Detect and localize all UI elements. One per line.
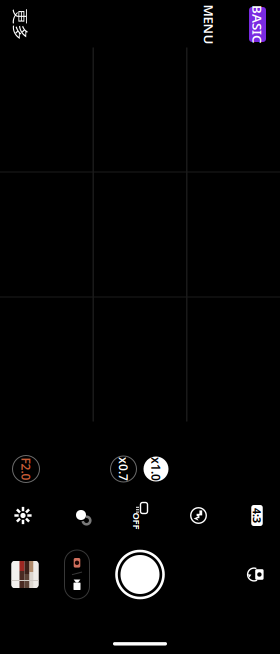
button[interactable]: Aspect ratio 4 by 3 <box>234 489 280 541</box>
button[interactable]: Bokeh <box>58 489 104 541</box>
button[interactable]: Aperture f 2.0 <box>0 448 52 489</box>
staticText: OFF <box>128 515 145 527</box>
button[interactable]: More <box>0 1 40 47</box>
button[interactable]: Last photo <box>0 542 50 606</box>
button[interactable]: BASIC <box>242 1 273 47</box>
staticText: x1.0 <box>144 461 168 477</box>
staticText: x0.7 <box>111 461 135 477</box>
button[interactable]: x1.0 <box>143 448 169 489</box>
staticText: MENU <box>189 16 229 33</box>
staticText: BASIC <box>238 16 277 33</box>
button[interactable]: MENU <box>194 1 224 47</box>
button[interactable]: Switch camera <box>232 542 280 606</box>
button[interactable]: Shutter <box>112 546 168 602</box>
button[interactable]: Live photo <box>175 489 221 541</box>
button[interactable]: Flash off <box>117 489 163 541</box>
button[interactable]: Photo or video mode <box>50 542 104 606</box>
button[interactable]: Exposure <box>0 489 46 541</box>
staticText: F2.0 <box>14 461 37 477</box>
staticText: 更多 <box>4 15 36 34</box>
button[interactable]: x0.7 <box>110 448 137 489</box>
staticText: 4:3 <box>249 508 264 523</box>
